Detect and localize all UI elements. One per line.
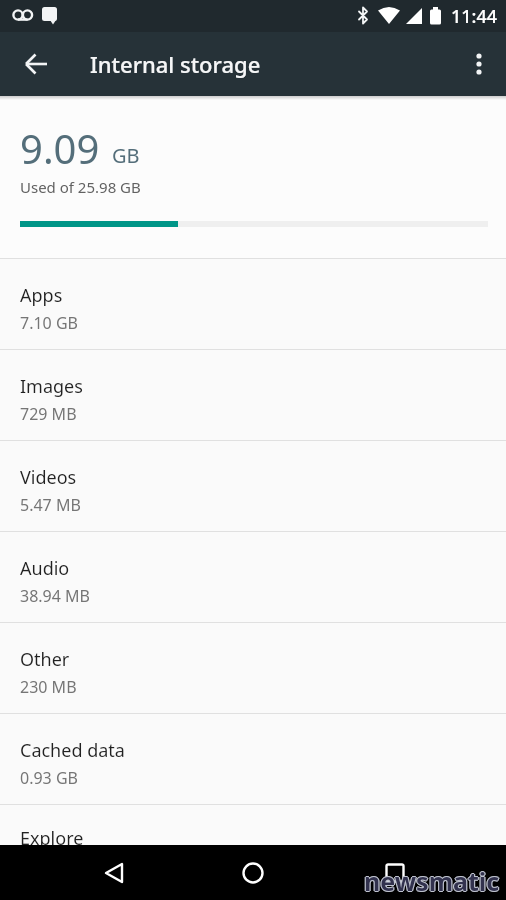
staticText: Audio xyxy=(20,556,70,581)
staticText: 230 MB xyxy=(20,676,77,698)
staticText: newsmatic xyxy=(363,864,499,898)
button[interactable]: Videos xyxy=(0,441,506,532)
button[interactable]: Other xyxy=(0,623,506,714)
staticText: Videos xyxy=(20,465,77,490)
button[interactable]: Images xyxy=(0,350,506,441)
staticText: 11:44 xyxy=(451,4,498,29)
staticText: 7.10 GB xyxy=(20,312,78,334)
staticText: Explore xyxy=(20,826,84,845)
staticText: Other xyxy=(20,647,70,672)
staticText: newsmatic xyxy=(364,864,500,898)
staticText: GB xyxy=(112,142,140,169)
staticText: 38.94 MB xyxy=(20,585,90,607)
staticText: Internal storage xyxy=(90,49,261,79)
button[interactable] xyxy=(229,849,277,897)
button[interactable]: Audio xyxy=(0,532,506,623)
staticText: 729 MB xyxy=(20,403,77,425)
button[interactable]: Cached data xyxy=(0,714,506,805)
button[interactable] xyxy=(458,40,506,88)
button[interactable]: Apps xyxy=(0,259,506,350)
button[interactable] xyxy=(371,849,419,897)
staticText: Cached data xyxy=(20,738,125,763)
button[interactable] xyxy=(12,40,48,88)
staticText: newsmatic xyxy=(365,864,501,898)
staticText: Used of 25.98 GB xyxy=(20,177,141,197)
staticText: newsmatic xyxy=(364,863,500,897)
staticText: 9.09 xyxy=(20,121,100,175)
button[interactable] xyxy=(91,849,139,897)
staticText: 0.93 GB xyxy=(20,767,78,789)
staticText: Apps xyxy=(20,283,63,308)
button[interactable]: Explore xyxy=(0,805,506,845)
staticText: 5.47 MB xyxy=(20,494,81,516)
staticText: newsmatic xyxy=(364,865,500,899)
staticText: Images xyxy=(20,374,83,399)
